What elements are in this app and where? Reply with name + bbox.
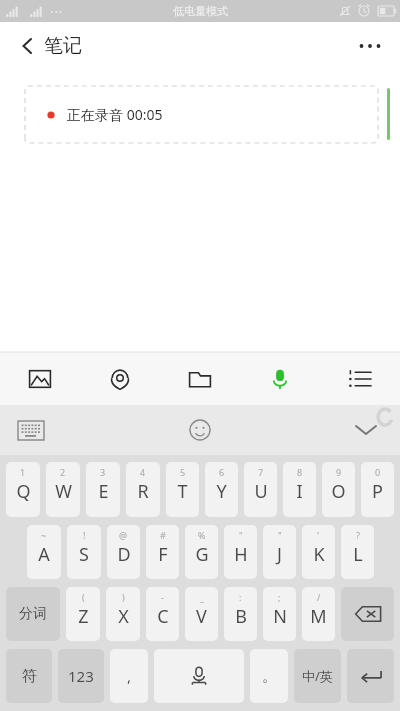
- button[interactable]: Q: [6, 462, 40, 517]
- button[interactable]: Location: [80, 352, 160, 405]
- button[interactable]: A: [27, 525, 61, 579]
- button[interactable]: U: [244, 462, 277, 517]
- button[interactable]: W: [46, 462, 80, 517]
- staticText: 中/英: [302, 667, 333, 685]
- button[interactable]: Backspace: [341, 587, 394, 641]
- staticText: @: [119, 529, 128, 541]
- staticText: X: [118, 604, 129, 629]
- staticText: S: [79, 542, 89, 567]
- button[interactable]: Insert image: [0, 352, 80, 405]
- staticText: 5: [180, 466, 186, 478]
- button[interactable]: Voice input: [154, 649, 244, 703]
- staticText: #: [160, 529, 166, 541]
- staticText: 8: [297, 466, 303, 478]
- staticText: U: [254, 479, 268, 504]
- staticText: 0: [375, 466, 381, 478]
- button[interactable]: Z: [66, 587, 100, 641]
- button[interactable]: E: [86, 462, 120, 517]
- staticText: 2: [60, 466, 66, 478]
- staticText: ;: [278, 591, 281, 603]
- button[interactable]: 符: [6, 649, 52, 703]
- staticText: Z: [78, 604, 89, 629]
- button[interactable]: More options: [348, 24, 392, 68]
- staticText: 3: [100, 466, 106, 478]
- button[interactable]: Back: [6, 26, 46, 66]
- staticText: L: [353, 542, 363, 567]
- staticText: 9: [336, 466, 342, 478]
- staticText: A: [38, 542, 50, 567]
- staticText: ): [122, 591, 125, 603]
- button[interactable]: Voice recording: [240, 352, 320, 405]
- button[interactable]: D: [107, 525, 140, 579]
- staticText: J: [277, 542, 282, 567]
- button[interactable]: Enter: [347, 649, 394, 703]
- staticText: R: [137, 479, 149, 504]
- staticText: ": [239, 529, 243, 541]
- button[interactable]: F: [146, 525, 179, 579]
- staticText: 分词: [19, 605, 47, 623]
- staticText: W: [55, 479, 72, 504]
- button[interactable]: M: [302, 587, 335, 641]
- staticText: Y: [216, 479, 227, 504]
- button[interactable]: List: [320, 352, 400, 405]
- staticText: 1: [20, 466, 26, 478]
- button[interactable]: K: [302, 525, 335, 579]
- button[interactable]: 中/英: [294, 649, 341, 703]
- button[interactable]: V: [185, 587, 218, 641]
- staticText: ?: [356, 529, 360, 541]
- button[interactable]: 分词: [6, 587, 60, 641]
- staticText: ": [278, 529, 282, 541]
- staticText: P: [372, 479, 383, 504]
- staticText: V: [196, 604, 207, 629]
- staticText: :: [239, 591, 242, 603]
- button[interactable]: R: [126, 462, 160, 517]
- button[interactable]: S: [67, 525, 101, 579]
- button[interactable]: H: [224, 525, 257, 579]
- staticText: -: [161, 591, 164, 603]
- staticText: Q: [16, 479, 31, 504]
- staticText: 。: [262, 667, 277, 686]
- staticText: /: [317, 591, 321, 603]
- button[interactable]: C: [146, 587, 179, 641]
- staticText: 笔记: [44, 34, 82, 58]
- button[interactable]: G: [185, 525, 218, 579]
- staticText: K: [313, 542, 325, 567]
- button[interactable]: 123: [58, 649, 104, 703]
- staticText: 正在录音 00:05: [67, 105, 163, 124]
- staticText: 7: [258, 466, 264, 478]
- button[interactable]: Keyboard layout: [14, 413, 48, 447]
- button[interactable]: Hide keyboard: [348, 412, 384, 448]
- button[interactable]: L: [341, 525, 374, 579]
- staticText: !: [83, 529, 86, 541]
- button[interactable]: O: [322, 462, 355, 517]
- button[interactable]: P: [361, 462, 394, 517]
- staticText: _: [200, 591, 204, 603]
- staticText: G: [195, 542, 209, 567]
- staticText: 符: [22, 667, 37, 686]
- button[interactable]: Files: [160, 352, 240, 405]
- button[interactable]: X: [106, 587, 140, 641]
- staticText: 6: [219, 466, 225, 478]
- button[interactable]: Y: [205, 462, 238, 517]
- button[interactable]: 。: [250, 649, 288, 703]
- button[interactable]: J: [263, 525, 296, 579]
- staticText: I: [296, 479, 303, 504]
- button[interactable]: I: [283, 462, 316, 517]
- staticText: O: [331, 479, 346, 504]
- button[interactable]: B: [224, 587, 257, 641]
- button[interactable]: T: [166, 462, 199, 517]
- staticText: 低电量模式: [173, 4, 228, 18]
- staticText: %: [198, 529, 206, 541]
- button[interactable]: ,: [110, 649, 148, 703]
- staticText: ': [317, 529, 320, 541]
- staticText: C: [157, 604, 169, 629]
- staticText: 4: [140, 466, 146, 478]
- staticText: M: [310, 604, 327, 629]
- staticText: E: [98, 479, 109, 504]
- staticText: ,: [127, 666, 132, 686]
- staticText: N: [273, 604, 287, 629]
- staticText: T: [177, 479, 188, 504]
- button[interactable]: Emoji: [182, 412, 218, 448]
- button[interactable]: N: [263, 587, 296, 641]
- staticText: D: [117, 542, 131, 567]
